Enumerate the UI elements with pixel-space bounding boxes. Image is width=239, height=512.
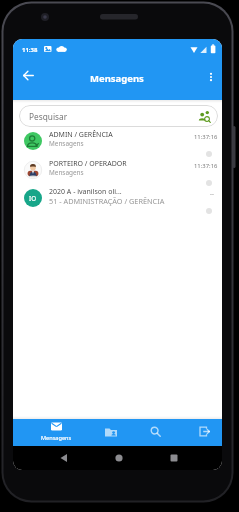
staticText: Mensagens xyxy=(49,139,84,148)
staticText: 51 - ADMINISTRAÇÃO / GERÊNCIA xyxy=(49,196,165,206)
button[interactable] xyxy=(134,419,176,446)
button[interactable] xyxy=(54,448,74,468)
button[interactable] xyxy=(109,448,129,468)
button[interactable] xyxy=(164,448,184,468)
button[interactable] xyxy=(183,419,222,446)
staticText: Mensagens xyxy=(90,72,144,85)
button[interactable]: Mensagens xyxy=(30,419,82,446)
button[interactable]: PORTEIRO / OPERADOR xyxy=(13,156,222,185)
staticText: 11:38 xyxy=(22,46,38,54)
staticText: Pesquisar xyxy=(29,111,68,122)
staticText: Mensagens xyxy=(49,168,84,177)
staticText: 11:37:16 xyxy=(194,133,218,141)
staticText: IO xyxy=(29,194,37,203)
staticText: PORTEIRO / OPERADOR xyxy=(49,159,127,169)
staticText: ADMIN / GERÊNCIA xyxy=(49,130,113,140)
button[interactable]: Pesquisar xyxy=(19,105,218,127)
button[interactable] xyxy=(17,64,40,87)
button[interactable]: IO xyxy=(13,184,222,213)
button[interactable] xyxy=(201,63,221,93)
button[interactable] xyxy=(90,419,132,446)
staticText: 2020 A - ivanilson oli... xyxy=(49,187,122,197)
staticText: 11:37:16 xyxy=(194,162,218,170)
staticText: -- xyxy=(210,190,214,198)
staticText: Mensagens xyxy=(41,434,72,442)
button[interactable]: ADMIN / GERÊNCIA xyxy=(13,127,222,156)
